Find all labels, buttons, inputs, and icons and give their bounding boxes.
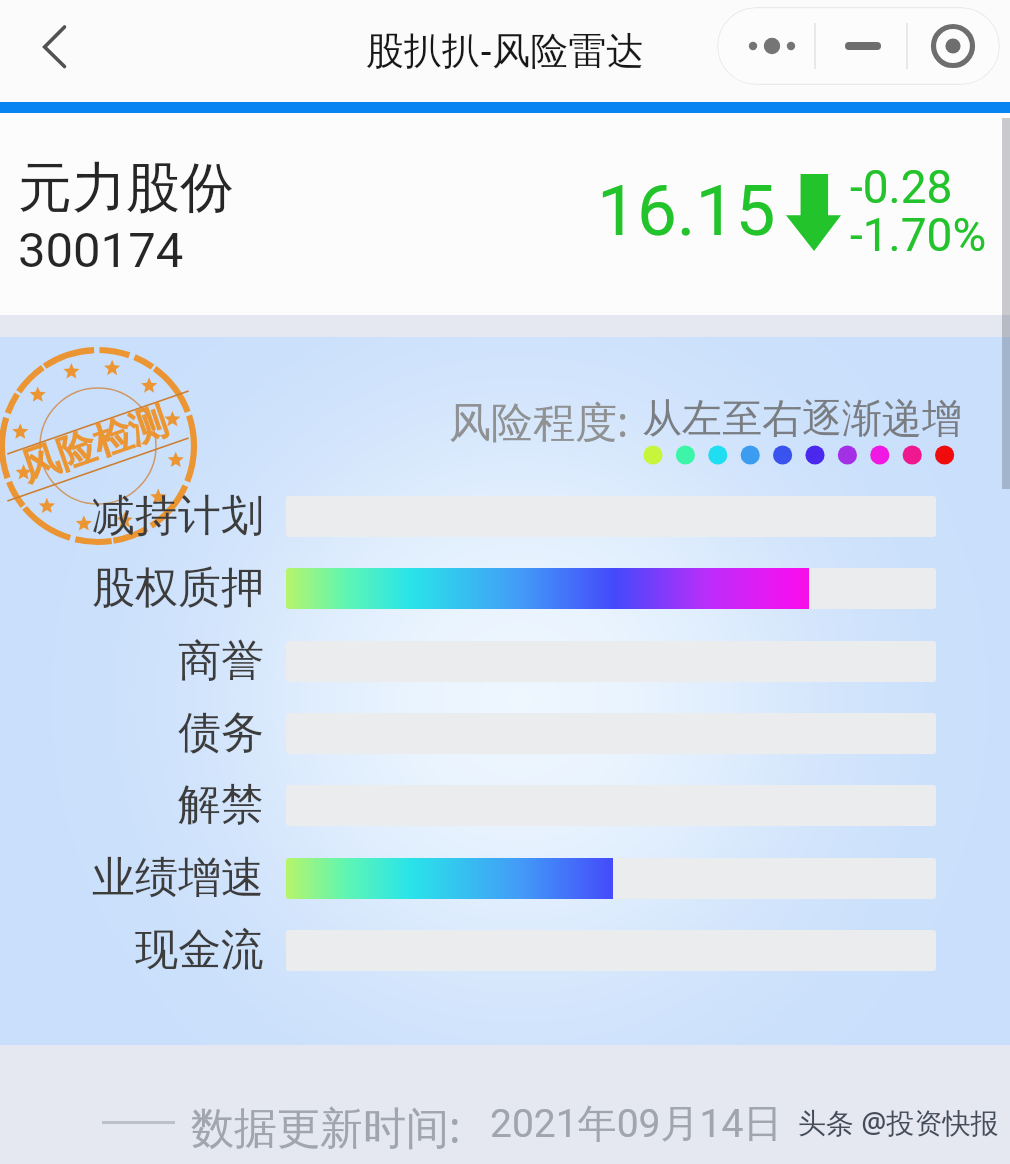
staticText: 股权质押 xyxy=(92,561,264,615)
staticText: 300174 xyxy=(18,222,184,279)
staticText: 债务 xyxy=(178,706,264,760)
staticText: 业绩增速 xyxy=(92,851,264,905)
button[interactable]: 现金流 xyxy=(0,914,1010,986)
button[interactable]: 减持计划 xyxy=(0,480,1010,552)
button[interactable]: 解禁 xyxy=(0,769,1010,841)
staticText: 从左至右逐渐递增 xyxy=(642,393,962,443)
staticText: -1.70% xyxy=(850,208,987,262)
button[interactable]: 商誉 xyxy=(0,625,1010,697)
staticText: 元力股份 xyxy=(18,154,234,222)
staticText: 2021年09月14日 xyxy=(490,1099,783,1148)
staticText: 风险检测 xyxy=(14,397,174,492)
staticText: -0.28 xyxy=(850,160,953,214)
button[interactable]: Back xyxy=(10,6,82,86)
staticText: 股扒扒-风险雷达 xyxy=(366,23,645,75)
staticText: 风险程度: xyxy=(449,392,629,449)
staticText: 现金流 xyxy=(135,923,264,977)
button[interactable]: 债务 xyxy=(0,697,1010,769)
button[interactable]: 业绩增速 xyxy=(0,842,1010,914)
staticText: 头条 @投资快报 xyxy=(798,1103,999,1141)
button[interactable] xyxy=(717,7,1000,85)
staticText: 16.15 xyxy=(597,169,776,252)
staticText: 解禁 xyxy=(178,778,264,832)
button[interactable]: 股权质押 xyxy=(0,552,1010,624)
staticText: 数据更新时间: xyxy=(191,1097,461,1156)
staticText: 商誉 xyxy=(178,634,264,688)
staticText: 减持计划 xyxy=(92,489,264,543)
